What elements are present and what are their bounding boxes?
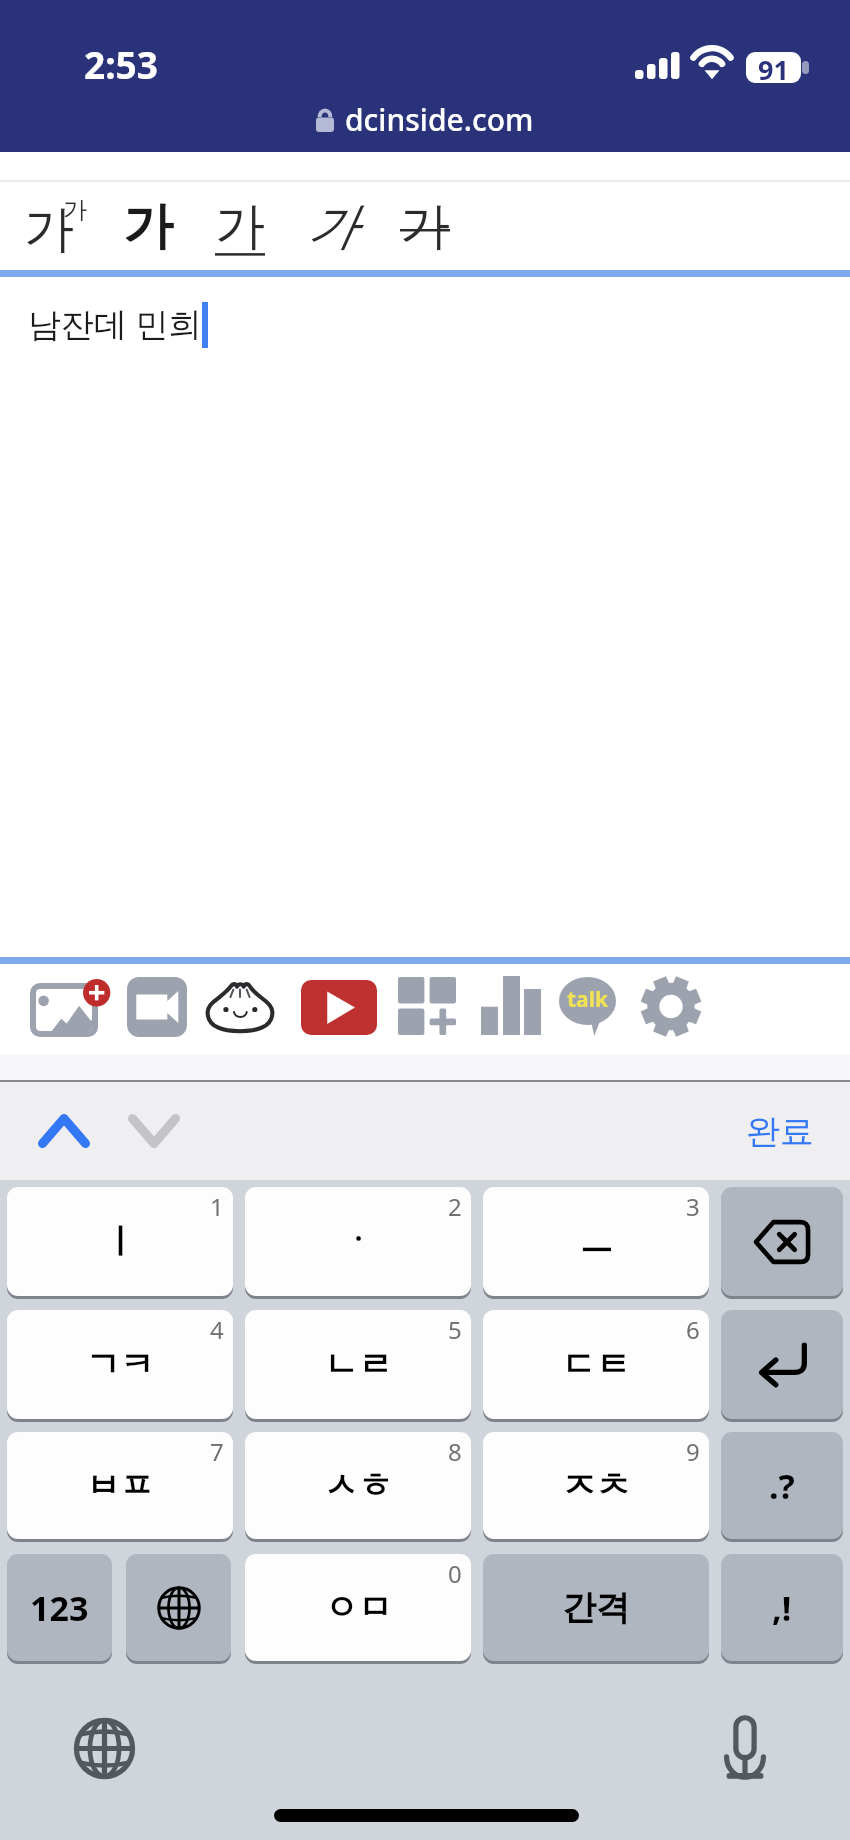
staticText: 4 [210,1313,224,1346]
button[interactable]: 0 [245,1554,471,1661]
button[interactable]: 2 [245,1187,471,1296]
staticText: 6 [686,1313,700,1346]
staticText: 가 [24,198,74,261]
button[interactable]: 7 [7,1432,233,1539]
button[interactable]: ,! [721,1554,843,1661]
button[interactable]: Add grid [383,962,471,1050]
staticText: dcinside.com [345,99,534,140]
staticText: ㄴㄹ [324,1343,392,1386]
button[interactable]: 완료 [734,1100,826,1163]
staticText: 91 [758,52,789,82]
button[interactable]: 9 [483,1432,709,1539]
staticText: 8 [448,1435,462,1468]
staticText: ㆍ [341,1220,375,1263]
staticText: ㅂㅍ [86,1464,154,1507]
button[interactable]: .? [721,1432,843,1539]
button[interactable]: 간격 [483,1554,709,1661]
staticText: ,! [772,1585,792,1631]
staticText: ㅣ [103,1220,137,1263]
staticText: ㅇㅁ [324,1586,392,1629]
button[interactable]: Dictation [702,1705,788,1791]
button[interactable]: Globe [61,1705,147,1791]
staticText: .? [769,1463,795,1509]
button[interactable]: Change language [126,1554,231,1661]
staticText: ㄱㅋ [86,1343,154,1386]
button[interactable]: Next field [114,1094,194,1168]
staticText: 가 [63,195,87,225]
button[interactable]: Sticker [196,963,284,1051]
staticText: ㅅㅎ [324,1464,392,1507]
staticText: 3 [686,1190,700,1223]
staticText: ㄷㅌ [562,1343,630,1386]
staticText: ㅡ [579,1220,613,1263]
button[interactable]: Poll [467,961,555,1049]
button[interactable]: 가 [104,182,192,270]
button[interactable]: 6 [483,1310,709,1419]
staticText: 5 [448,1313,462,1346]
button[interactable]: 가 [4,182,96,270]
staticText: 0 [448,1557,462,1590]
button[interactable]: Settings [627,962,715,1050]
button[interactable]: Video [113,963,201,1051]
button[interactable]: Enter [721,1310,843,1419]
button[interactable]: YouTube [295,963,383,1051]
button[interactable]: 가 [196,182,284,270]
button[interactable]: 가 [288,182,376,270]
button[interactable]: Add photo [25,964,113,1052]
button[interactable]: 1 [7,1187,233,1296]
button[interactable]: KakaoTalk [543,964,631,1052]
staticText: 123 [30,1585,89,1631]
staticText: 가 [400,195,450,258]
staticText: 1 [210,1190,224,1223]
staticText: 7 [210,1435,224,1468]
button[interactable]: 4 [7,1310,233,1419]
staticText: 가 [215,195,265,258]
button[interactable]: 8 [245,1432,471,1539]
button[interactable]: Previous field [24,1094,104,1168]
staticText: 9 [686,1435,700,1468]
staticText: 간격 [562,1586,630,1629]
staticText: 가 [307,195,357,258]
staticText: talk [567,985,608,1014]
button[interactable]: 가 [381,182,469,270]
button[interactable]: Backspace [721,1187,843,1296]
staticText: 2 [448,1190,462,1223]
staticText: 남잔데 민희 [28,301,202,346]
staticText: ㅈㅊ [562,1464,630,1507]
staticText: 가 [123,195,173,258]
button[interactable]: 123 [7,1554,112,1661]
button[interactable]: 5 [245,1310,471,1419]
staticText: 완료 [746,1110,814,1153]
button[interactable]: 3 [483,1187,709,1296]
staticText: 2:53 [84,39,158,89]
